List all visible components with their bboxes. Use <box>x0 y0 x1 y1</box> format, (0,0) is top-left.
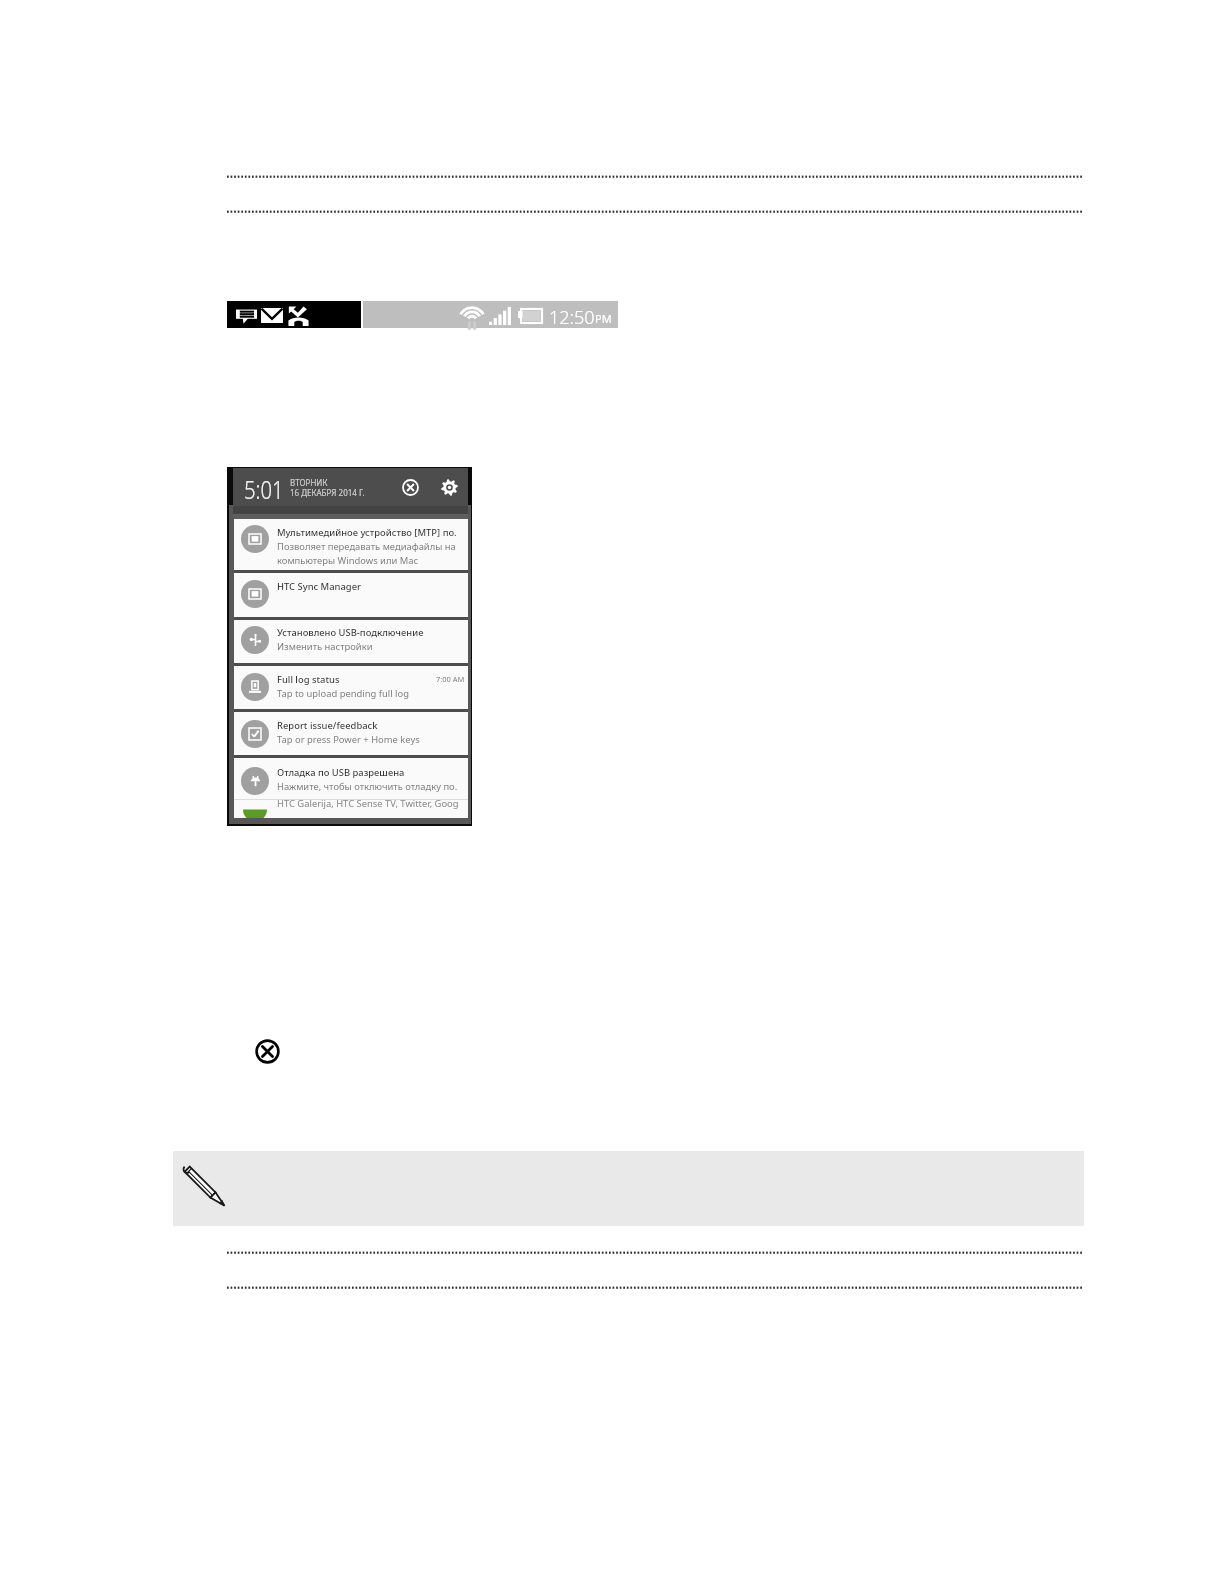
staticText: Установлено USB-подключение <box>277 626 424 639</box>
button[interactable]: Отладка по USB разрешена <box>234 758 468 799</box>
button[interactable]: HTC Galerija, HTC Sense TV, Twitter, Goo… <box>234 799 468 818</box>
staticText: PM <box>595 311 612 326</box>
staticText: Мультимедийное устройство [MTP] по. <box>277 526 457 539</box>
staticText: Full log status <box>277 673 340 686</box>
button[interactable]: HTC Sync Manager <box>234 573 468 617</box>
staticText: Нажмите, чтобы отключить отладку по. <box>277 780 458 793</box>
staticText: Отладка по USB разрешена <box>277 766 405 779</box>
button[interactable]: Full log status <box>234 666 468 709</box>
button[interactable]: Мультимедийное устройство [MTP] по. <box>234 519 468 570</box>
staticText: Tap to upload pending full log <box>277 687 409 700</box>
staticText: HTC Galerija, HTC Sense TV, Twitter, Goo… <box>277 797 459 810</box>
staticText: ВТОРНИК <box>290 477 328 488</box>
staticText: Report issue/feedback <box>277 719 378 732</box>
staticText: 5:01 <box>244 471 284 503</box>
staticText: HTC Sync Manager <box>277 580 362 593</box>
staticText: 7:00 AM <box>436 674 465 684</box>
button[interactable]: Report issue/feedback <box>234 712 468 755</box>
button[interactable]: Close <box>254 1038 281 1065</box>
staticText: Изменить настройки <box>277 640 373 653</box>
button[interactable]: Clear all notifications <box>399 476 421 498</box>
staticText: 12:50 <box>549 305 595 330</box>
button[interactable]: Установлено USB-подключение <box>234 620 468 663</box>
staticText: Tap or press Power + Home keys <box>277 733 420 746</box>
staticText: компьютеры Windows или Mac <box>277 554 418 567</box>
staticText: Позволяет передавать медиафайлы на <box>277 540 456 553</box>
staticText: 16 ДЕКАБРЯ 2014 Г. <box>290 487 365 498</box>
button[interactable]: Settings <box>438 476 460 498</box>
